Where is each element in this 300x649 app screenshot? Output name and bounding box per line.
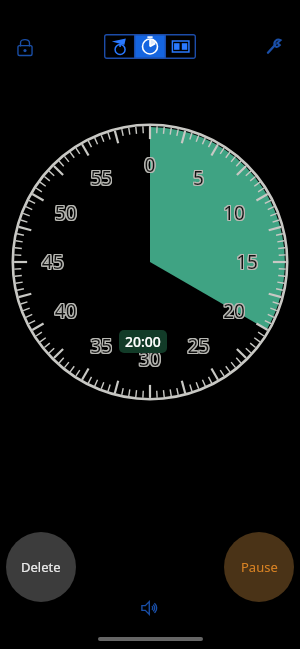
button[interactable]: Pause (224, 532, 294, 602)
staticText: Delete (21, 558, 61, 576)
staticText: 20:00 (125, 332, 161, 351)
button[interactable]: Timer (135, 34, 165, 59)
button[interactable]: Sound (136, 596, 164, 620)
staticText: Pause (241, 558, 278, 576)
button[interactable]: Settings (258, 33, 288, 61)
button[interactable]: Delete (6, 532, 76, 602)
button[interactable]: Stopwatch (104, 34, 134, 59)
button[interactable]: Lock (10, 33, 40, 61)
button[interactable]: Panels (166, 34, 196, 59)
